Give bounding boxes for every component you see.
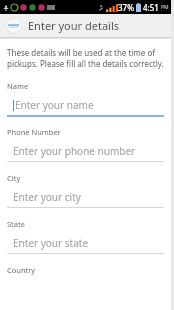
staticText: Phone Number <box>7 127 61 137</box>
staticText: City <box>7 173 21 183</box>
staticText: Enter your phone number <box>13 144 136 158</box>
staticText: Enter your city <box>13 190 81 204</box>
button[interactable]: App logo, navigate up <box>5 17 22 34</box>
button[interactable]: Enter your city <box>7 189 164 205</box>
staticText: Enter your state <box>13 236 89 250</box>
staticText: Country <box>7 265 36 275</box>
staticText: 37% <box>118 2 134 13</box>
staticText: Enter your details <box>28 18 120 33</box>
staticText: These details will be used at the time o… <box>7 47 164 69</box>
staticText: Name <box>7 81 29 91</box>
staticText: 4:51 <box>143 2 159 13</box>
staticText: Enter your name <box>15 98 94 112</box>
staticText: PM <box>161 4 169 11</box>
button[interactable]: Enter your name <box>7 97 164 113</box>
button[interactable]: Enter your phone number <box>7 143 164 159</box>
staticText: State <box>7 219 25 229</box>
button[interactable]: Enter your state <box>7 235 164 251</box>
